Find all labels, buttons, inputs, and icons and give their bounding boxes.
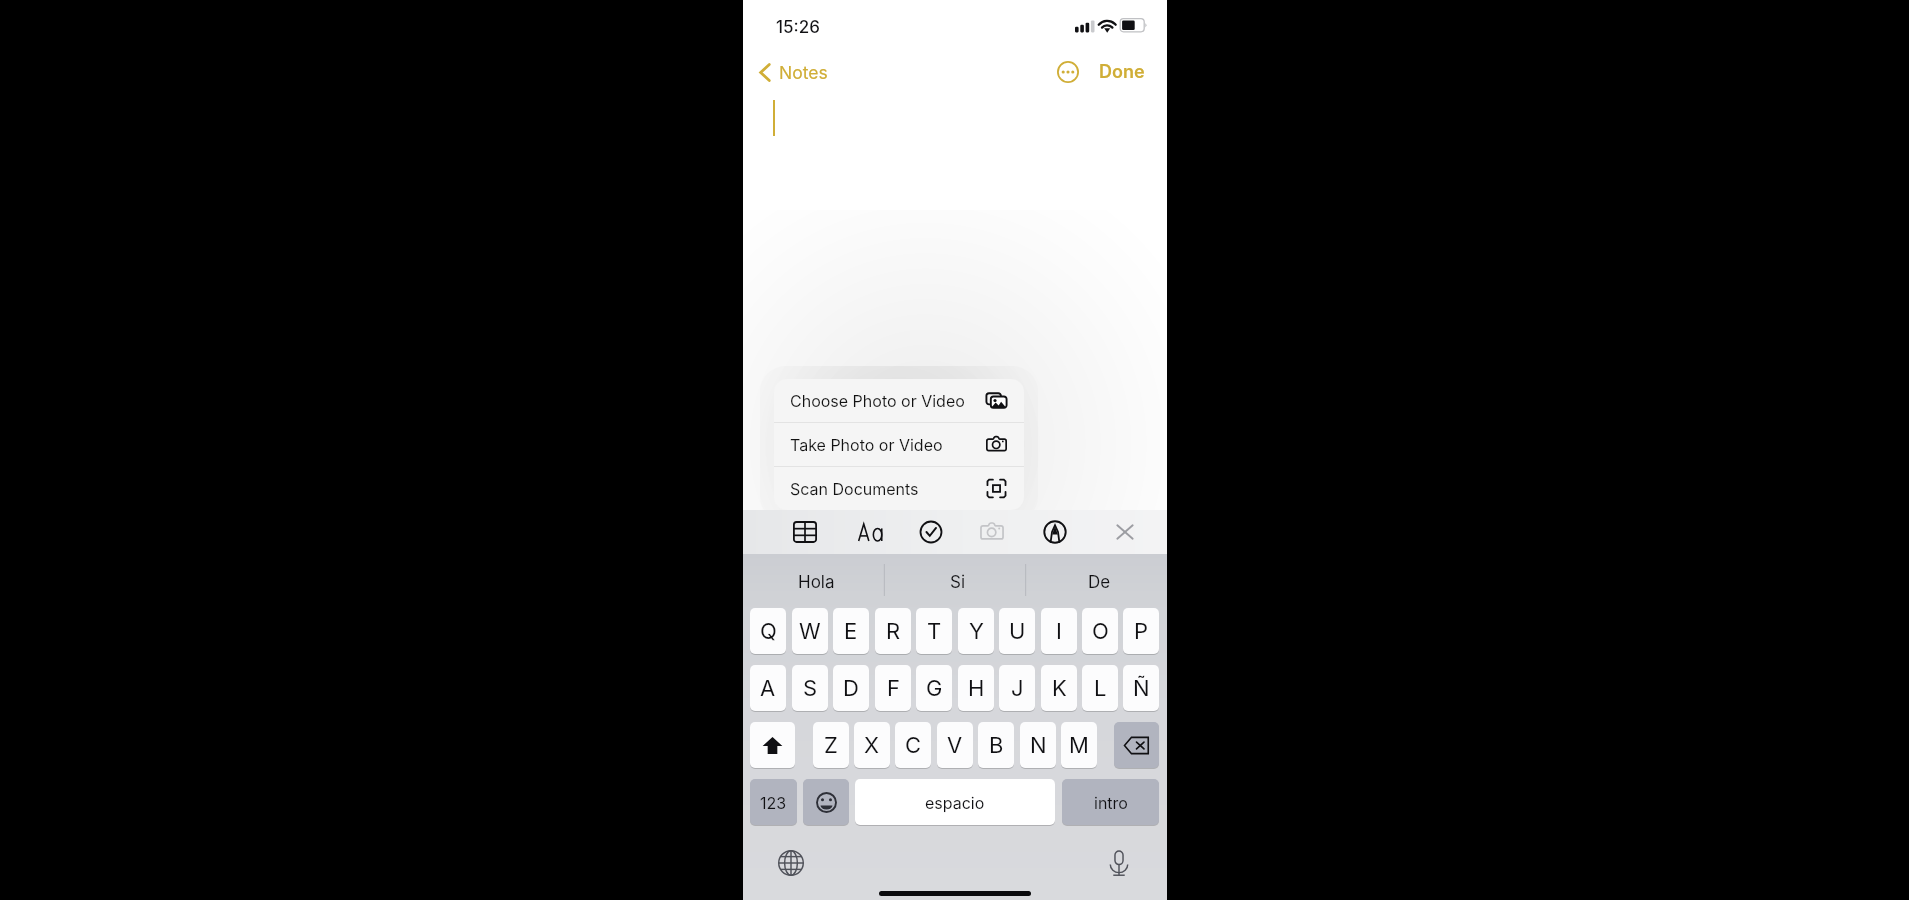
button[interactable]: B xyxy=(978,722,1014,768)
button[interactable]: F xyxy=(875,665,911,711)
button[interactable]: espacio xyxy=(855,779,1055,825)
button[interactable]: M xyxy=(1061,722,1097,768)
button[interactable]: Q xyxy=(750,608,786,654)
button[interactable]: P xyxy=(1123,608,1159,654)
staticText: Hola xyxy=(798,572,835,593)
button[interactable]: De xyxy=(1029,556,1170,608)
staticText: Y xyxy=(969,618,984,645)
staticText: O xyxy=(1092,618,1109,645)
staticText: Scan Documents xyxy=(790,479,919,498)
staticText: U xyxy=(1009,618,1026,645)
button[interactable]: Camera xyxy=(970,510,1014,554)
staticText: W xyxy=(799,618,821,645)
staticText: X xyxy=(864,732,880,759)
staticText: 15:26 xyxy=(776,17,820,38)
button[interactable]: Backspace xyxy=(1114,722,1159,768)
button[interactable]: 123 xyxy=(750,779,797,825)
button[interactable]: Choose Photo or Video xyxy=(774,379,1024,422)
button[interactable]: T xyxy=(916,608,952,654)
staticText: P xyxy=(1134,618,1149,645)
button[interactable]: Notes xyxy=(756,58,831,86)
button[interactable]: S xyxy=(792,665,828,711)
button[interactable]: O xyxy=(1082,608,1118,654)
button[interactable]: I xyxy=(1041,608,1077,654)
staticText: R xyxy=(886,618,901,645)
staticText: Choose Photo or Video xyxy=(790,391,965,410)
button[interactable]: Close xyxy=(1103,510,1147,554)
button[interactable]: Scan Documents xyxy=(774,467,1024,510)
staticText: D xyxy=(843,675,859,702)
button[interactable]: A xyxy=(750,665,786,711)
button[interactable]: X xyxy=(854,722,890,768)
button[interactable]: Take Photo or Video xyxy=(774,423,1024,466)
staticText: K xyxy=(1052,675,1067,702)
button[interactable]: Y xyxy=(958,608,994,654)
staticText: T xyxy=(927,618,942,645)
button[interactable]: Ñ xyxy=(1123,665,1159,711)
button[interactable]: G xyxy=(916,665,952,711)
button[interactable]: Switch keyboard xyxy=(777,849,805,877)
button[interactable]: L xyxy=(1082,665,1118,711)
staticText: C xyxy=(905,732,922,759)
staticText: 123 xyxy=(760,793,787,812)
button[interactable]: Checklist xyxy=(909,510,953,554)
button[interactable]: K xyxy=(1041,665,1077,711)
staticText: Z xyxy=(824,732,838,759)
staticText: N xyxy=(1030,732,1047,759)
button[interactable]: R xyxy=(875,608,911,654)
staticText: Ñ xyxy=(1133,675,1150,702)
staticText: espacio xyxy=(925,793,985,812)
button[interactable]: J xyxy=(999,665,1035,711)
button[interactable]: More options xyxy=(1054,58,1082,86)
button[interactable]: intro xyxy=(1062,779,1159,825)
staticText: G xyxy=(926,675,943,702)
button[interactable]: E xyxy=(833,608,869,654)
button[interactable]: Si xyxy=(887,556,1028,608)
button[interactable]: U xyxy=(999,608,1035,654)
staticText: J xyxy=(1011,675,1024,702)
staticText: B xyxy=(989,732,1004,759)
staticText: S xyxy=(803,675,818,702)
staticText: M xyxy=(1069,732,1089,759)
button[interactable]: Emoji xyxy=(803,779,849,825)
staticText: intro xyxy=(1094,793,1128,812)
staticText: I xyxy=(1056,618,1062,645)
staticText: A xyxy=(760,675,776,702)
button[interactable]: C xyxy=(895,722,931,768)
button[interactable]: Table xyxy=(783,510,827,554)
staticText: Notes xyxy=(779,62,828,83)
staticText: L xyxy=(1094,675,1107,702)
staticText: Q xyxy=(760,618,777,645)
button[interactable]: Hola xyxy=(746,556,887,608)
staticText: F xyxy=(887,675,900,702)
staticText: Si xyxy=(950,572,966,593)
button[interactable]: V xyxy=(937,722,973,768)
staticText: Done xyxy=(1099,61,1145,83)
button[interactable]: Z xyxy=(813,722,849,768)
button[interactable]: Shift xyxy=(750,722,795,768)
button[interactable]: Markup xyxy=(1033,510,1077,554)
staticText: V xyxy=(947,732,963,759)
staticText: Take Photo or Video xyxy=(790,435,943,454)
button[interactable]: H xyxy=(958,665,994,711)
button[interactable]: W xyxy=(792,608,828,654)
staticText: De xyxy=(1088,572,1111,593)
button[interactable]: Dictate xyxy=(1105,849,1133,877)
button[interactable]: N xyxy=(1020,722,1056,768)
staticText: H xyxy=(968,675,985,702)
button[interactable]: Done xyxy=(1095,58,1149,86)
button[interactable]: Aa xyxy=(850,510,894,554)
button[interactable]: D xyxy=(833,665,869,711)
staticText: E xyxy=(844,618,858,645)
